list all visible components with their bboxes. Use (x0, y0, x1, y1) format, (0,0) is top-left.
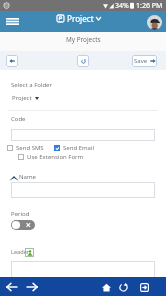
button[interactable]: Use Extension Form (17, 152, 85, 162)
staticText: Use Extension Form (27, 153, 84, 161)
staticText: Period (11, 210, 30, 218)
button[interactable]: Send SMS (6, 143, 45, 153)
button[interactable]: Profile (146, 14, 162, 30)
staticText: Name (19, 173, 36, 181)
staticText: Send SMS (16, 144, 44, 152)
staticText: Project (12, 94, 32, 102)
button[interactable]: Code field (11, 129, 155, 141)
button[interactable]: Project (55, 11, 103, 26)
staticText: Project (67, 13, 94, 24)
staticText: Leader (11, 248, 30, 256)
button[interactable]: Back (4, 280, 18, 294)
staticText: Code (11, 115, 26, 123)
button[interactable]: Name field (11, 182, 155, 198)
button[interactable]: Select leader (25, 248, 34, 257)
button[interactable]: Leader field (11, 261, 155, 281)
button[interactable]: Reload (116, 280, 130, 294)
button[interactable]: Menu (3, 14, 22, 29)
staticText: Send Email (63, 144, 95, 152)
button[interactable]: Refresh (77, 55, 89, 67)
button[interactable]: Name (9, 173, 36, 181)
button[interactable]: Forward (25, 280, 39, 294)
staticText: Save (134, 57, 148, 65)
staticText: My Projects (66, 35, 101, 44)
staticText: 1:26 PM (136, 1, 163, 11)
button[interactable]: Back (6, 55, 18, 67)
staticText: 34% (115, 1, 129, 11)
button[interactable]: Save (132, 55, 157, 67)
button[interactable]: Tabs (137, 280, 151, 294)
staticText: Select a Folder (11, 81, 52, 89)
button[interactable]: Period toggle (11, 220, 35, 230)
button[interactable]: Send Email (53, 143, 96, 153)
button[interactable]: Project (11, 93, 40, 103)
button[interactable]: Home (99, 280, 113, 294)
